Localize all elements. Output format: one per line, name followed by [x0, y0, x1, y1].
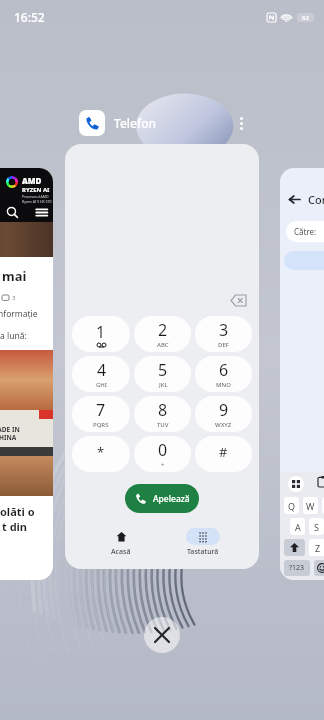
button[interactable]: 7 [72, 396, 130, 432]
staticText: Către: [294, 226, 317, 237]
staticText: 8 [158, 399, 168, 421]
staticText: Tastatură [187, 547, 219, 557]
staticText: TUV [157, 421, 169, 429]
button[interactable]: Close all [144, 617, 180, 653]
button[interactable]: Menu [35, 206, 48, 219]
staticText: WXYZ [215, 421, 232, 429]
button[interactable]: A [290, 518, 305, 535]
staticText: Acasă [111, 547, 131, 557]
button[interactable]: 6 [195, 356, 252, 392]
button[interactable]: 1 [72, 316, 130, 352]
staticText: AMD [22, 175, 42, 186]
button[interactable]: Z [309, 539, 324, 556]
staticText: 9 [219, 399, 229, 421]
button[interactable]: AMD [0, 168, 53, 580]
button[interactable]: Shift [284, 539, 305, 556]
staticText: nformație [0, 308, 38, 320]
staticText: 0 [158, 439, 168, 461]
button[interactable]: Tastatură [178, 526, 228, 559]
staticText: 16:52 [14, 9, 45, 25]
button[interactable]: Backspace [231, 295, 246, 306]
button[interactable]: Search [6, 206, 19, 219]
staticText: 2 [158, 319, 168, 341]
button[interactable]: 4 [72, 356, 130, 392]
staticText: PQRS [93, 421, 109, 429]
staticText: ?123 [289, 563, 305, 573]
staticText: * [97, 443, 105, 461]
button[interactable]: W [303, 497, 318, 514]
staticText: RYZEN AI [22, 186, 50, 194]
button[interactable]: Back [288, 193, 301, 206]
staticText: 6 [219, 359, 229, 381]
button[interactable]: ?123 [284, 560, 310, 576]
button[interactable]: 3 [195, 316, 252, 352]
button[interactable] [79, 110, 105, 136]
staticText: Q [288, 500, 296, 512]
staticText: 1 [96, 321, 106, 343]
staticText: 7 [96, 399, 106, 421]
button[interactable]: Acasă [96, 526, 146, 559]
staticText: Apelează [153, 493, 190, 505]
button[interactable]: E [322, 497, 324, 514]
button[interactable]: # [195, 436, 252, 472]
staticText: Conv [308, 192, 324, 207]
button[interactable]: S [309, 518, 324, 535]
button[interactable]: 2 [134, 316, 191, 352]
button[interactable]: 0 [134, 436, 191, 472]
button[interactable]: Back [280, 168, 324, 580]
staticText: 4 [97, 359, 107, 381]
staticText: W [306, 500, 315, 512]
staticText: 3 [219, 319, 229, 341]
staticText: Procesorul AMD Ryzen AI 9 HX 370 [22, 194, 52, 204]
staticText: S [314, 521, 319, 533]
staticText: Telefon [114, 115, 157, 131]
staticText: A [295, 521, 301, 533]
button[interactable]: Q [284, 497, 299, 514]
staticText: a lună: [0, 330, 27, 342]
button[interactable]: 9 [195, 396, 252, 432]
button[interactable]: * [72, 436, 130, 472]
staticText: + [161, 461, 165, 469]
staticText: # [219, 443, 228, 461]
button[interactable]: Toolbar [288, 476, 304, 492]
staticText: Z [315, 542, 321, 554]
staticText: JKL [159, 381, 168, 389]
button[interactable]: More options [233, 115, 249, 131]
button[interactable]: 8 [134, 396, 191, 432]
staticText: MNO [216, 381, 231, 389]
button[interactable]: Emoji [314, 560, 324, 576]
button[interactable]: Clipboard [318, 476, 324, 487]
staticText: 62 [302, 14, 309, 22]
staticText: MADE IN CHINA [0, 425, 20, 442]
staticText: mai [2, 267, 27, 285]
staticText: ABC [157, 341, 169, 349]
button[interactable]: Către: [286, 221, 324, 242]
staticText: t din [2, 519, 28, 534]
button[interactable]: 5 [134, 356, 191, 392]
button[interactable]: Apelează [125, 484, 199, 513]
staticText: 5 [158, 359, 168, 381]
staticText: 3 [12, 294, 16, 302]
staticText: DEF [218, 341, 229, 349]
staticText: olăti o [0, 504, 35, 519]
staticText: GHI [96, 381, 107, 389]
